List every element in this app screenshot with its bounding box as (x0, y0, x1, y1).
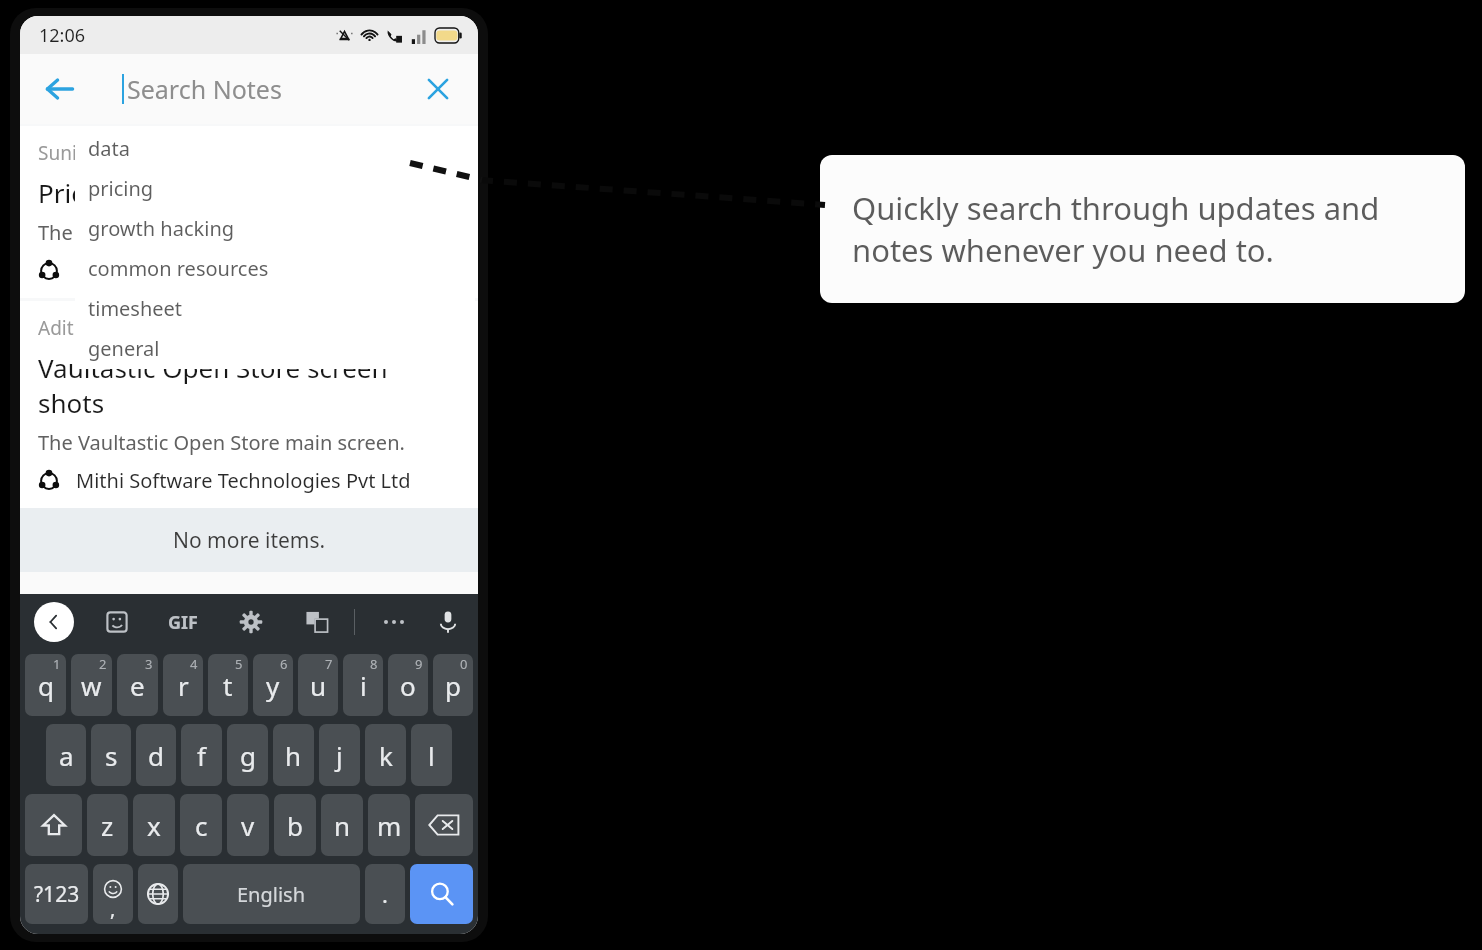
staticText: 2 (99, 655, 107, 673)
button[interactable]: c (180, 794, 222, 856)
staticText: x (147, 808, 161, 843)
button[interactable]: l (411, 724, 452, 786)
button[interactable]: Sunil Uttamchandani (20, 126, 478, 298)
button[interactable]: s (91, 724, 131, 786)
button[interactable]: timesheet (75, 288, 475, 328)
button[interactable]: data (75, 128, 475, 168)
staticText: pricing (88, 175, 154, 202)
staticText: o (400, 668, 416, 703)
staticText: t (223, 668, 233, 703)
staticText: 3 (145, 655, 153, 673)
button[interactable]: ?123 (25, 864, 88, 924)
button[interactable]: Back (34, 602, 74, 642)
button[interactable]: g (227, 724, 268, 786)
staticText: z (101, 808, 114, 843)
button[interactable]: Settings (236, 607, 266, 637)
button[interactable]: y (253, 654, 293, 716)
button[interactable]: t (208, 654, 248, 716)
staticText: Search Notes (127, 72, 282, 106)
staticText: 5 (235, 655, 243, 673)
staticText: growth hacking (88, 215, 235, 242)
button[interactable]: Quickly search through updates and notes… (820, 155, 1465, 303)
button[interactable]: f (181, 724, 222, 786)
staticText: Mithi Software Technologies Pvt Ltd (76, 257, 411, 284)
button[interactable]: common resources (75, 248, 475, 288)
staticText: Vaultastic Open Store screen shots (38, 350, 460, 420)
button[interactable]: Stickers (102, 607, 132, 637)
staticText: f (197, 738, 206, 773)
button[interactable]: j (319, 724, 360, 786)
button[interactable]: d (136, 724, 176, 786)
staticText: Sunil Uttamchandani (38, 140, 225, 166)
staticText: a (59, 738, 74, 773)
button[interactable]: pricing (75, 168, 475, 208)
button[interactable]: x (133, 794, 175, 856)
button[interactable]: . (365, 864, 405, 924)
button[interactable]: general (75, 328, 475, 368)
staticText: i (360, 668, 367, 703)
staticText: c (195, 808, 208, 843)
button[interactable]: Emoji and comma (93, 864, 133, 924)
staticText: general (88, 335, 160, 362)
button[interactable]: Back (36, 65, 84, 113)
staticText: p (445, 668, 461, 703)
button[interactable]: q (25, 654, 66, 716)
button[interactable]: e (117, 654, 158, 716)
button[interactable]: Voice input (432, 606, 464, 638)
button[interactable]: Shift (25, 794, 82, 856)
staticText: u (310, 668, 327, 703)
staticText: , (110, 895, 116, 922)
button[interactable]: h (273, 724, 314, 786)
button[interactable]: Backspace (415, 794, 473, 856)
button[interactable]: History (390, 136, 416, 162)
button[interactable]: o (388, 654, 428, 716)
staticText: 9 (415, 655, 423, 673)
staticText: e (130, 668, 145, 703)
button[interactable]: n (321, 794, 363, 856)
staticText: 1 (53, 655, 61, 673)
button[interactable]: u (298, 654, 338, 716)
button[interactable]: a (46, 724, 86, 786)
staticText: v (241, 808, 255, 843)
staticText: b (287, 808, 303, 843)
button[interactable]: Search (410, 864, 473, 924)
staticText: 8 (370, 655, 378, 673)
staticText: ?123 (34, 880, 80, 909)
staticText: The teams agreed to revisit the slabs. (38, 219, 388, 246)
button[interactable]: k (365, 724, 406, 786)
staticText: d (148, 738, 164, 773)
button[interactable]: GIF (168, 610, 198, 635)
button[interactable]: Change language (138, 864, 178, 924)
staticText: r (178, 668, 189, 703)
staticText: English (237, 881, 306, 908)
button[interactable]: r (163, 654, 203, 716)
staticText: data (88, 135, 130, 162)
button[interactable]: v (227, 794, 269, 856)
button[interactable]: p (433, 654, 473, 716)
button[interactable]: Clear (416, 67, 460, 111)
button[interactable]: i (343, 654, 383, 716)
button[interactable]: z (87, 794, 128, 856)
button[interactable]: growth hacking (75, 208, 475, 248)
staticText: y (266, 668, 280, 703)
button[interactable]: English (183, 864, 360, 924)
staticText: w (81, 668, 102, 703)
button[interactable]: w (71, 654, 112, 716)
button[interactable]: Aditi Malaviya (20, 301, 478, 508)
button[interactable]: m (368, 794, 410, 856)
staticText: k (379, 738, 393, 773)
staticText: Pricing discussion notes (38, 175, 332, 210)
staticText: The Vaultastic Open Store main screen. T… (38, 429, 460, 456)
button[interactable]: b (274, 794, 316, 856)
staticText: 7 (325, 655, 333, 673)
staticText: timesheet (88, 295, 183, 322)
staticText: Mithi Software Technologies Pvt Ltd (76, 467, 411, 494)
button[interactable]: More (379, 607, 409, 637)
staticText: 4 (190, 655, 198, 673)
button[interactable]: Translate (302, 607, 332, 637)
staticText: Aditi Malaviya (38, 315, 162, 341)
